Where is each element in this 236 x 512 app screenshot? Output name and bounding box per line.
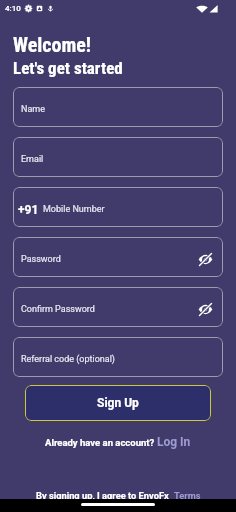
button[interactable]: Toggle password visibility — [194, 248, 216, 270]
staticText: Referral code (optional) — [21, 354, 115, 365]
button[interactable]: Log In — [157, 435, 191, 449]
button[interactable]: Password — [13, 237, 223, 277]
button[interactable]: Name — [13, 87, 223, 127]
staticText: +91 — [18, 203, 39, 217]
button[interactable]: Sign Up — [25, 385, 211, 421]
staticText: Welcome! — [13, 33, 92, 56]
staticText: Already have an account? — [45, 437, 155, 448]
staticText: Log In — [157, 435, 191, 449]
staticText: Email — [21, 154, 44, 165]
staticText: Sign Up — [97, 396, 139, 410]
button[interactable]: Referral code (optional) — [13, 337, 223, 377]
staticText: By signing up, I agree to EnvoFx — [36, 490, 169, 501]
button[interactable]: Toggle password visibility — [194, 298, 216, 320]
staticText: Name — [21, 104, 45, 115]
staticText: Terms — [174, 490, 201, 501]
button[interactable]: Email — [13, 137, 223, 177]
staticText: Password — [21, 254, 61, 265]
staticText: 4:10 — [5, 4, 21, 13]
staticText: Mobile Number — [43, 204, 105, 215]
button[interactable]: Terms — [174, 490, 201, 501]
staticText: Let's get started — [13, 58, 123, 78]
button[interactable]: +91 — [13, 187, 223, 227]
staticText: Confirm Password — [21, 304, 95, 315]
button[interactable]: Confirm Password — [13, 287, 223, 327]
